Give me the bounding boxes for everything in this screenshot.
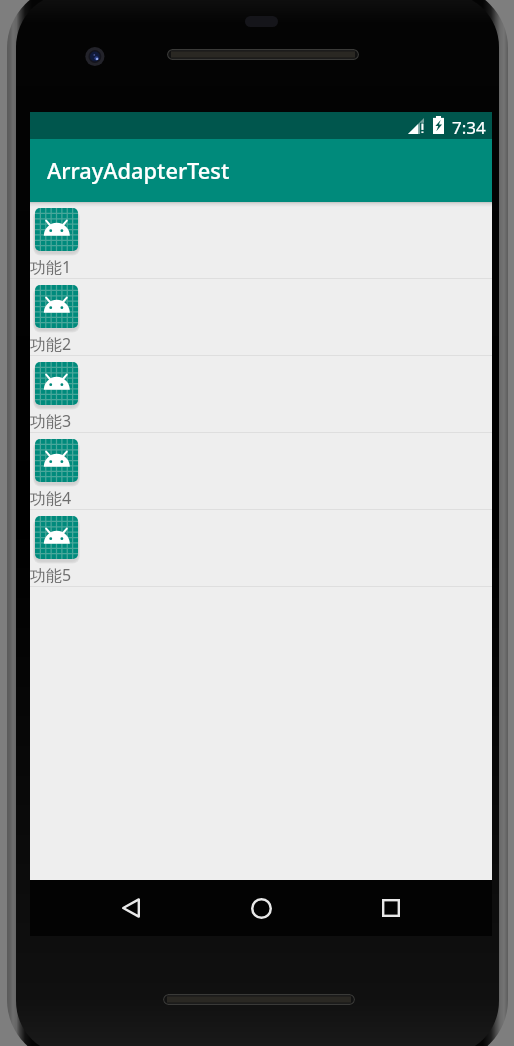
- staticText: 功能1: [30, 256, 72, 278]
- button[interactable]: Home: [237, 884, 285, 932]
- staticText: 7:34: [452, 116, 486, 139]
- button[interactable]: 功能2: [30, 279, 492, 356]
- button[interactable]: Back: [97, 884, 145, 932]
- staticText: 功能5: [30, 564, 72, 586]
- button[interactable]: 功能1: [30, 202, 492, 279]
- button[interactable]: 功能5: [30, 510, 492, 587]
- staticText: 功能2: [30, 333, 72, 355]
- staticText: ArrayAdapterTest: [47, 156, 230, 186]
- staticText: 功能4: [30, 487, 72, 509]
- button[interactable]: 功能3: [30, 356, 492, 433]
- button[interactable]: 功能4: [30, 433, 492, 510]
- staticText: 功能3: [30, 410, 72, 432]
- button[interactable]: Recent apps: [357, 884, 405, 932]
